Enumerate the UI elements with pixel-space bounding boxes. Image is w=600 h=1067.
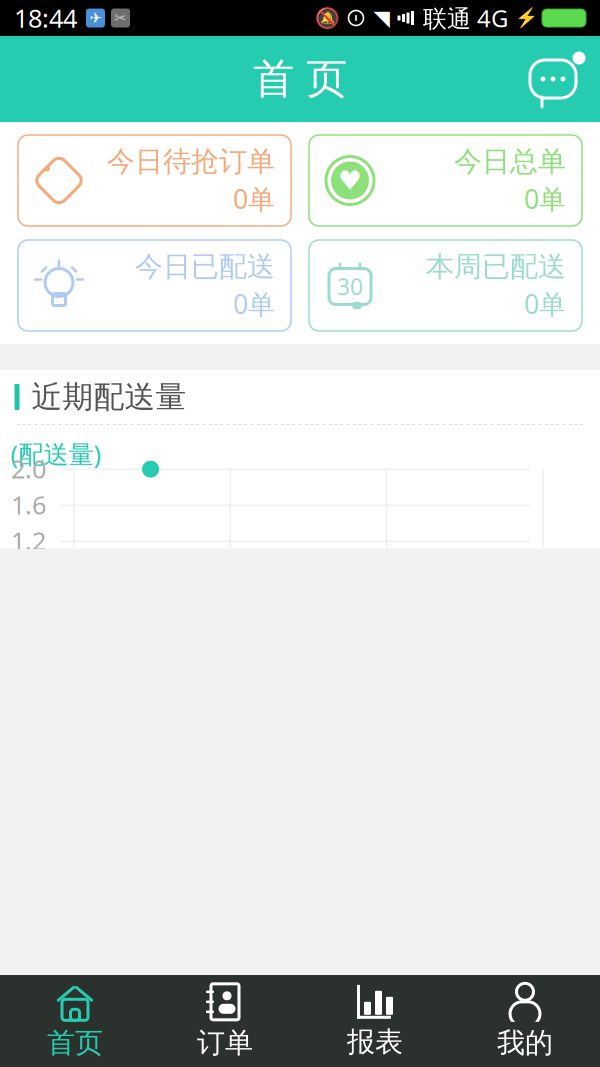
staticText: (配送量) — [10, 437, 101, 471]
staticText: 0单 — [524, 181, 566, 216]
staticText: ◥ — [373, 6, 389, 30]
staticText: 0单 — [524, 286, 566, 321]
staticText: ♥ — [338, 165, 362, 196]
staticText: 0单 — [233, 181, 275, 216]
button[interactable]: 30 — [309, 240, 582, 331]
button[interactable]: 我的 — [450, 975, 600, 1067]
button[interactable]: 今日已配送 — [18, 240, 291, 331]
staticText: 近期配送量 — [31, 378, 186, 416]
staticText: 联通 4G — [423, 2, 508, 34]
staticText: 报表 — [347, 1025, 403, 1059]
staticText: 首 页 — [253, 54, 347, 104]
staticText: 1.2 — [11, 524, 46, 557]
staticText: 今日总单 — [454, 145, 566, 179]
staticText: 1.6 — [11, 488, 46, 521]
button[interactable]: 首页 — [0, 975, 150, 1067]
staticText: 首页 — [47, 1026, 103, 1060]
staticText: ✈ — [89, 10, 101, 26]
button[interactable]: 今日待抢订单 — [18, 135, 291, 226]
button[interactable]: 报表 — [300, 975, 450, 1067]
staticText: ✂ — [114, 10, 126, 26]
staticText: 今日待抢订单 — [107, 145, 275, 179]
button[interactable]: 订单 — [150, 975, 300, 1067]
staticText: ⚡ — [515, 7, 538, 29]
staticText: 订单 — [197, 1026, 253, 1060]
staticText: 我的 — [497, 1026, 553, 1060]
staticText: 本周已配送 — [426, 250, 566, 284]
button[interactable]: 消息 — [520, 48, 600, 110]
staticText: 今日已配送 — [135, 250, 275, 284]
staticText: 2.0 — [11, 452, 46, 485]
staticText: 18:44 — [14, 1, 77, 35]
button[interactable]: ♥ — [309, 135, 582, 226]
staticText: 🔕 — [314, 7, 339, 29]
staticText: 30 — [337, 271, 363, 301]
staticText: 0单 — [233, 286, 275, 321]
